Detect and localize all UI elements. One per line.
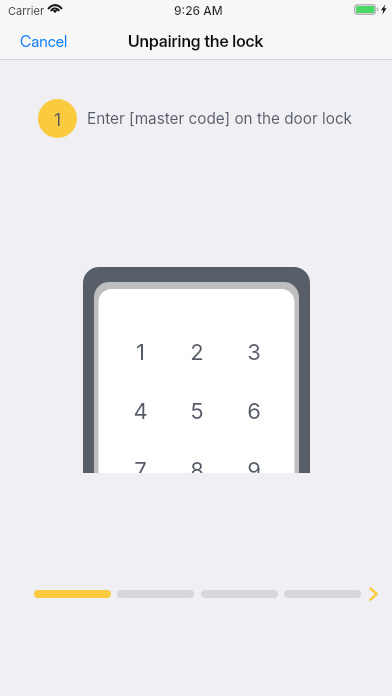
staticText: 9:26 AM: [174, 3, 223, 18]
staticText: 1: [54, 109, 62, 130]
staticText: 5: [190, 398, 204, 425]
staticText: 2: [190, 339, 204, 366]
button[interactable]: Step 1 of 4, current: [34, 590, 111, 598]
staticText: 8: [190, 457, 204, 473]
button[interactable]: Cancel: [0, 26, 80, 57]
staticText: 7: [134, 457, 147, 473]
staticText: 9: [247, 457, 261, 473]
staticText: Cancel: [20, 32, 68, 51]
staticText: 1: [136, 339, 145, 366]
staticText: 3: [247, 339, 261, 366]
button[interactable]: Step 3 of 4: [201, 590, 278, 598]
staticText: Enter [master code] on the door lock: [87, 109, 353, 128]
button[interactable]: Next step: [363, 584, 383, 604]
staticText: 4: [133, 398, 148, 425]
button[interactable]: Step 4 of 4: [284, 590, 361, 598]
button[interactable]: Step 2 of 4: [117, 590, 194, 598]
staticText: Unpairing the lock: [128, 31, 264, 51]
staticText: Carrier: [8, 4, 45, 17]
staticText: 6: [247, 398, 261, 425]
